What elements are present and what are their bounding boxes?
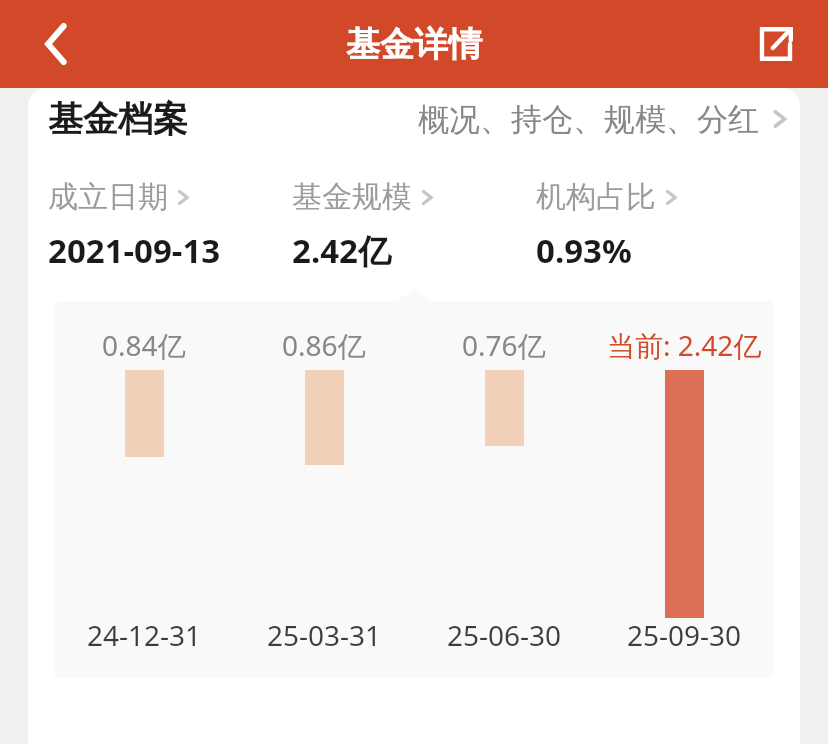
button[interactable]: 基金规模 [292,178,536,273]
staticText: 2021-09-13 [48,228,221,273]
staticText: 基金档案 [48,97,188,141]
staticText: 基金规模 [292,178,412,216]
staticText: 25-06-30 [447,616,562,654]
staticText: 当前: 2.42亿 [607,326,762,364]
button[interactable]: 机构占比 [536,178,780,273]
staticText: 成立日期 [48,178,168,216]
button[interactable]: 成立日期 [48,178,292,273]
staticText: 概况、持仓、规模、分红 [418,100,759,139]
button[interactable]: Share [748,16,804,72]
staticText: 0.84亿 [102,326,186,364]
staticText: 0.86亿 [282,326,366,364]
staticText: 基金详情 [346,23,482,66]
staticText: 0.76亿 [462,326,546,364]
staticText: 25-09-30 [627,616,742,654]
staticText: 机构占比 [536,178,656,216]
staticText: 0.93% [536,228,632,273]
staticText: 2.42亿 [292,228,391,273]
button[interactable]: Back [28,16,84,72]
staticText: 25-03-31 [267,616,382,654]
button[interactable]: 基金档案 [28,88,800,150]
staticText: 24-12-31 [87,616,202,654]
